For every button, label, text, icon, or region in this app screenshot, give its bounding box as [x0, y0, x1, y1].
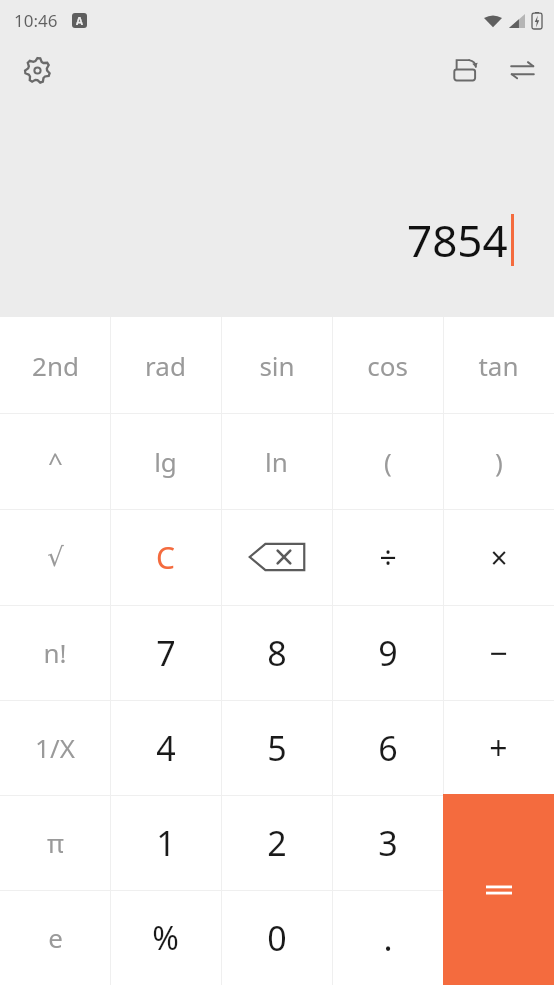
staticText: × — [490, 537, 508, 578]
staticText: ÷ — [379, 537, 397, 578]
staticText: . — [383, 915, 393, 961]
staticText: sin — [259, 348, 295, 383]
button[interactable]: ( — [332, 413, 443, 509]
staticText: A — [76, 14, 83, 28]
staticText: ) — [495, 444, 503, 479]
staticText: 2nd — [32, 348, 79, 383]
staticText: 0 — [267, 915, 287, 961]
button[interactable]: √ — [0, 509, 110, 605]
button[interactable]: e — [0, 890, 110, 985]
staticText: tan — [478, 348, 519, 383]
staticText: C — [156, 537, 175, 578]
staticText: 3 — [378, 820, 398, 866]
button[interactable]: n! — [0, 605, 110, 700]
staticText: 1 — [156, 820, 176, 866]
staticText: lg — [154, 444, 177, 479]
button[interactable]: C — [110, 509, 221, 605]
staticText: 1/X — [35, 730, 75, 765]
button[interactable]: 1/X — [0, 700, 110, 795]
button[interactable]: 3 — [332, 795, 443, 890]
button[interactable]: Rotate screen — [442, 46, 490, 94]
button[interactable] — [443, 794, 554, 985]
button[interactable]: ln — [221, 413, 332, 509]
staticText: 9 — [378, 630, 398, 676]
button[interactable]: sin — [221, 317, 332, 413]
staticText: rad — [145, 348, 186, 383]
button[interactable]: . — [332, 890, 443, 985]
button[interactable]: ) — [443, 413, 554, 509]
button[interactable]: ^ — [0, 413, 110, 509]
staticText: π — [47, 825, 64, 860]
button[interactable]: 2 — [221, 795, 332, 890]
button[interactable]: 6 — [332, 700, 443, 795]
button[interactable]: tan — [443, 317, 554, 413]
button[interactable]: 2nd — [0, 317, 110, 413]
button[interactable]: 5 — [221, 700, 332, 795]
button[interactable]: lg — [110, 413, 221, 509]
button[interactable]: rad — [110, 317, 221, 413]
button[interactable]: × — [443, 509, 554, 605]
staticText: 5 — [267, 725, 287, 771]
staticText: cos — [367, 348, 408, 383]
button[interactable]: 1 — [110, 795, 221, 890]
staticText: √ — [47, 542, 64, 572]
button[interactable]: − — [443, 605, 554, 700]
button[interactable]: 8 — [221, 605, 332, 700]
staticText: 4 — [156, 725, 176, 771]
staticText: % — [152, 916, 179, 960]
staticText: − — [489, 631, 508, 675]
button[interactable]: 7 — [110, 605, 221, 700]
staticText: ^ — [48, 444, 63, 479]
staticText: ( — [384, 444, 392, 479]
staticText: 7854 — [407, 210, 508, 270]
staticText: ln — [265, 444, 288, 479]
staticText: n! — [43, 635, 67, 670]
button[interactable]: ÷ — [332, 509, 443, 605]
button[interactable]: 0 — [221, 890, 332, 985]
button[interactable]: 9 — [332, 605, 443, 700]
button[interactable]: Unit converter — [498, 46, 546, 94]
staticText: + — [489, 726, 508, 770]
button[interactable]: % — [110, 890, 221, 985]
staticText: 7 — [156, 630, 176, 676]
button[interactable]: Settings — [13, 46, 61, 94]
button[interactable]: Backspace — [221, 509, 332, 605]
staticText: e — [48, 920, 63, 955]
button[interactable]: 4 — [110, 700, 221, 795]
button[interactable]: + — [443, 700, 554, 795]
staticText: 6 — [378, 725, 398, 771]
button[interactable]: cos — [332, 317, 443, 413]
staticText: 10:46 — [14, 9, 58, 32]
button[interactable]: π — [0, 795, 110, 890]
staticText: 2 — [267, 820, 287, 866]
staticText: 8 — [267, 630, 287, 676]
